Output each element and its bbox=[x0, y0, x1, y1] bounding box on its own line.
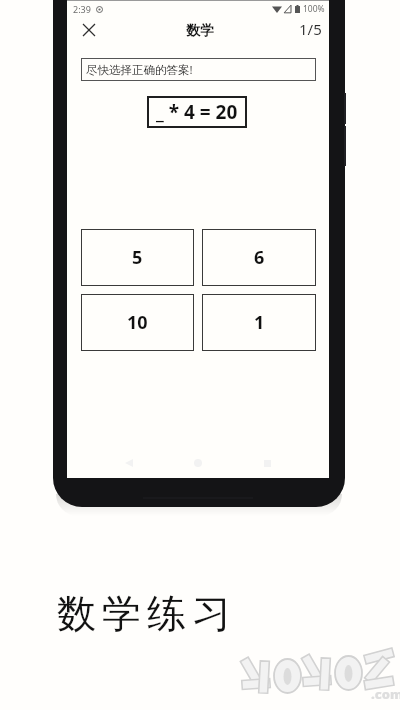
staticText: 尽快选择正确的答案! bbox=[86, 62, 193, 78]
staticText: 100% bbox=[303, 3, 325, 15]
staticText: 数学练习 bbox=[54, 589, 234, 638]
button[interactable]: Close bbox=[79, 20, 99, 40]
button[interactable]: 10 bbox=[81, 294, 194, 351]
staticText: 1 bbox=[254, 310, 265, 335]
staticText: 6 bbox=[254, 245, 265, 270]
button[interactable]: 5 bbox=[81, 229, 194, 286]
staticText: 2:39 bbox=[73, 3, 91, 15]
button[interactable]: Home bbox=[184, 449, 212, 477]
button[interactable]: 1/5 bbox=[296, 17, 324, 41]
staticText: _ * 4 = 20 bbox=[156, 99, 238, 125]
staticText: 1/5 bbox=[299, 19, 322, 39]
button[interactable]: Recent apps bbox=[253, 449, 281, 477]
staticText: 数学 bbox=[186, 22, 214, 40]
button[interactable]: 1 bbox=[202, 294, 316, 351]
staticText: .com bbox=[371, 685, 400, 703]
button[interactable]: 6 bbox=[202, 229, 316, 286]
staticText: 10 bbox=[127, 310, 148, 335]
staticText: 5 bbox=[132, 245, 143, 270]
